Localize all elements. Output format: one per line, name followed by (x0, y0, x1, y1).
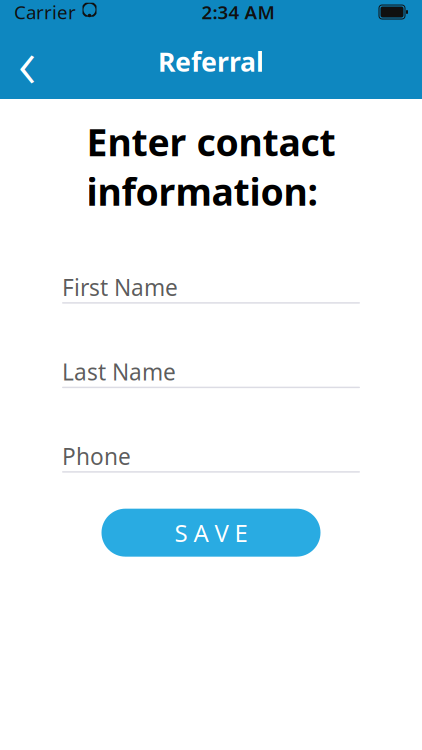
staticText: ‹ (18, 15, 36, 108)
staticText: Phone (62, 441, 131, 471)
button[interactable]: S A V E (101, 509, 320, 557)
staticText: First Name (62, 272, 178, 302)
staticText: Referral (158, 44, 264, 79)
button[interactable]: Back (0, 30, 54, 92)
staticText: 2:34 AM (201, 0, 274, 24)
staticText: Last Name (62, 357, 176, 387)
staticText: Enter contact information: (86, 117, 335, 216)
staticText: S A V E (174, 517, 247, 549)
staticText: Carrier (14, 0, 76, 24)
